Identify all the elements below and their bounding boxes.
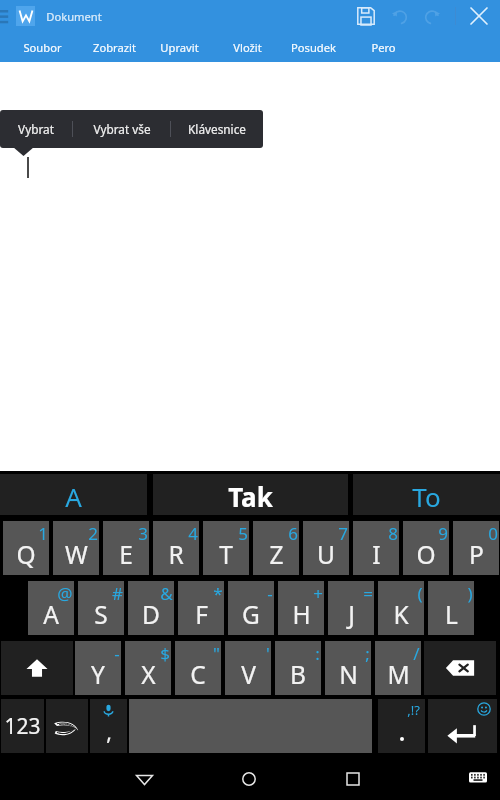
button[interactable]: Menu	[0, 0, 20, 32]
button[interactable]: D	[128, 581, 174, 635]
staticText: -	[114, 642, 120, 665]
staticText: ,!?	[407, 701, 420, 719]
staticText: 1	[38, 522, 48, 545]
staticText: Pero	[371, 40, 396, 55]
button[interactable]: Switch keyboard	[46, 699, 88, 753]
staticText: 9	[438, 522, 448, 545]
staticText: Tak	[228, 479, 273, 514]
button[interactable]: K	[378, 581, 424, 635]
staticText: L	[445, 598, 458, 631]
staticText: A	[65, 479, 82, 514]
button[interactable]: L	[428, 581, 474, 635]
button[interactable]: Redo	[417, 1, 447, 31]
button[interactable]: B	[275, 641, 321, 695]
button[interactable]: G	[228, 581, 274, 635]
button[interactable]: H	[278, 581, 324, 635]
button[interactable]: Pero	[361, 32, 405, 62]
staticText: Klávesnice	[188, 121, 246, 137]
staticText: -	[267, 582, 273, 605]
button[interactable]: C	[175, 641, 221, 695]
button[interactable]: Close	[464, 1, 494, 31]
staticText: B	[290, 658, 306, 691]
button[interactable]: 123	[1, 699, 44, 753]
button[interactable]: Shift	[1, 641, 73, 695]
staticText: 7	[338, 522, 348, 545]
button[interactable]: Enter	[428, 699, 497, 753]
staticText: H	[292, 598, 311, 631]
staticText: K	[393, 598, 409, 631]
staticText: J	[348, 598, 355, 631]
button[interactable]: Hide keyboard	[463, 762, 493, 792]
button[interactable]: J	[328, 581, 374, 635]
staticText: &	[160, 582, 173, 605]
button[interactable]: Vybrat	[0, 110, 72, 148]
staticText: Z	[269, 538, 284, 571]
staticText: +	[313, 582, 323, 605]
staticText: 5	[238, 522, 248, 545]
staticText: G	[242, 598, 260, 631]
staticText: Upravit	[160, 40, 199, 55]
staticText: N	[339, 658, 358, 691]
button[interactable]: S	[78, 581, 124, 635]
button[interactable]: A	[0, 474, 147, 515]
button[interactable]: W	[53, 521, 99, 575]
button[interactable]: E	[103, 521, 149, 575]
button[interactable]: Soubor	[14, 32, 71, 62]
button[interactable]: Vložit	[219, 32, 275, 62]
staticText: V	[241, 658, 256, 691]
button[interactable]: ,!?	[378, 699, 425, 753]
button[interactable]: U	[303, 521, 349, 575]
staticText: C	[190, 658, 206, 691]
staticText: 3	[138, 522, 148, 545]
button[interactable]: N	[325, 641, 371, 695]
button[interactable]: Undo	[384, 1, 414, 31]
button[interactable]: Y	[75, 641, 121, 695]
staticText: Vložit	[233, 40, 262, 55]
button[interactable]: Tak	[153, 474, 348, 515]
staticText: I	[372, 538, 381, 571]
button[interactable]: Upravit	[148, 32, 210, 62]
button[interactable]: Vybrat vše	[73, 110, 170, 148]
button[interactable]: Home	[231, 761, 267, 797]
button[interactable]: Zobrazit	[78, 32, 150, 62]
staticText: Soubor	[23, 40, 62, 55]
staticText: Vybrat vše	[93, 121, 151, 137]
button[interactable]: V	[225, 641, 271, 695]
button[interactable]: Z	[253, 521, 299, 575]
button[interactable]: Klávesnice	[171, 110, 263, 148]
button[interactable]: Posudek	[280, 32, 347, 62]
button[interactable]: Back	[126, 761, 162, 797]
staticText: '	[266, 642, 270, 665]
button[interactable]: ,	[90, 699, 127, 753]
staticText: W	[65, 538, 88, 571]
button[interactable]: A	[28, 581, 74, 635]
staticText: ;	[365, 642, 370, 665]
staticText: 4	[188, 522, 198, 545]
button[interactable]: To	[353, 474, 500, 515]
staticText: U	[317, 538, 335, 571]
staticText: )	[467, 582, 473, 605]
staticText: Dokument	[46, 9, 102, 24]
staticText: #	[112, 582, 123, 605]
button[interactable]: P	[453, 521, 499, 575]
button[interactable]: I	[353, 521, 399, 575]
button[interactable]: Recents	[335, 761, 371, 797]
button[interactable]: Save	[351, 1, 381, 31]
staticText: 2	[88, 522, 98, 545]
button[interactable]: T	[203, 521, 249, 575]
button[interactable]: Q	[3, 521, 49, 575]
button[interactable]: X	[125, 641, 171, 695]
staticText: M	[387, 658, 410, 691]
staticText: E	[119, 538, 133, 571]
staticText: @	[57, 582, 73, 605]
button[interactable]: O	[403, 521, 449, 575]
button[interactable]: F	[178, 581, 224, 635]
button[interactable]: R	[153, 521, 199, 575]
staticText: F	[195, 598, 208, 631]
staticText: 123	[4, 712, 41, 741]
button[interactable]: M	[375, 641, 421, 695]
button[interactable]: Backspace	[424, 641, 496, 695]
staticText: Vybrat	[18, 121, 54, 137]
staticText: /	[413, 642, 420, 665]
